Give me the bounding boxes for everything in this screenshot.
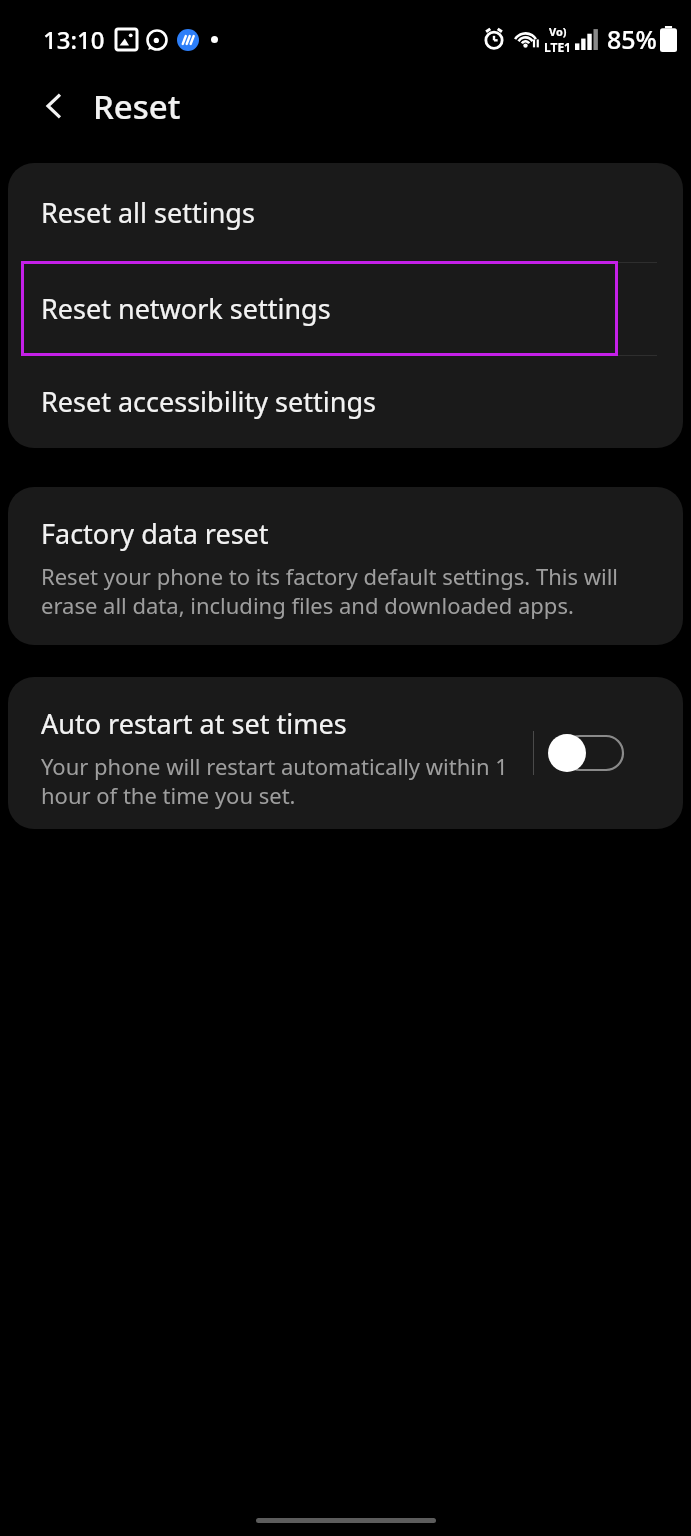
staticText: Your phone will restart automatically wi… — [41, 751, 520, 810]
button[interactable]: Auto restart at set times — [41, 705, 520, 810]
staticText: Reset your phone to its factory default … — [41, 561, 647, 620]
staticText: Factory data reset — [41, 515, 269, 552]
staticText: Vo) — [549, 24, 567, 39]
button[interactable]: Reset accessibility settings — [8, 355, 683, 448]
button[interactable]: Auto restart at set times toggle — [545, 729, 623, 777]
button[interactable]: Back — [26, 78, 82, 134]
staticText: Reset — [93, 84, 181, 129]
button[interactable]: Reset all settings — [8, 163, 683, 262]
staticText: 13:10 — [43, 23, 105, 56]
staticText: Reset all settings — [41, 194, 255, 231]
staticText: LTE1 — [544, 39, 571, 55]
button[interactable]: Factory data reset — [8, 487, 683, 645]
staticText: 85% — [607, 22, 657, 56]
staticText: Auto restart at set times — [41, 705, 347, 742]
staticText: Reset accessibility settings — [41, 383, 376, 420]
button[interactable]: Reset network settings — [8, 262, 683, 355]
staticText: Reset network settings — [41, 290, 331, 327]
